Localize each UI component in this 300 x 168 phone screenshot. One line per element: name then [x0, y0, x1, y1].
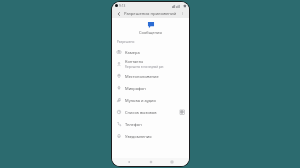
staticText: Телефон	[125, 122, 142, 127]
button[interactable]: Местоположение	[112, 70, 189, 82]
button[interactable]: Главный экран	[147, 158, 155, 166]
button[interactable]: Камера	[112, 46, 189, 58]
button[interactable]: Контакты	[112, 58, 189, 70]
staticText: 9:13	[119, 4, 126, 8]
button[interactable]: Список вызовов	[112, 106, 189, 118]
staticText: Список вызовов	[125, 110, 157, 115]
button[interactable]: Ещё	[179, 10, 186, 17]
button[interactable]: Назад	[115, 10, 122, 17]
staticText: Музыка и аудио	[125, 98, 156, 103]
button[interactable]: Музыка и аудио	[112, 94, 189, 106]
button[interactable]: Микрофон	[112, 82, 189, 94]
staticText: Уведомления	[125, 134, 152, 139]
button[interactable]: Назад	[125, 158, 133, 166]
staticText: Контакты	[125, 59, 144, 64]
staticText: Камера	[125, 50, 140, 55]
staticText: Разрешения приложений	[124, 11, 179, 17]
staticText: Разрешено в последний раз	[125, 65, 164, 69]
staticText: Сообщения	[139, 30, 162, 35]
button[interactable]: Телефон	[112, 118, 189, 130]
staticText: Разрешено	[117, 40, 135, 44]
button[interactable]: Последние приложения	[168, 158, 176, 166]
button[interactable]: Уведомления	[112, 130, 189, 142]
staticText: Местоположение	[125, 74, 159, 79]
staticText: Микрофон	[125, 86, 146, 91]
